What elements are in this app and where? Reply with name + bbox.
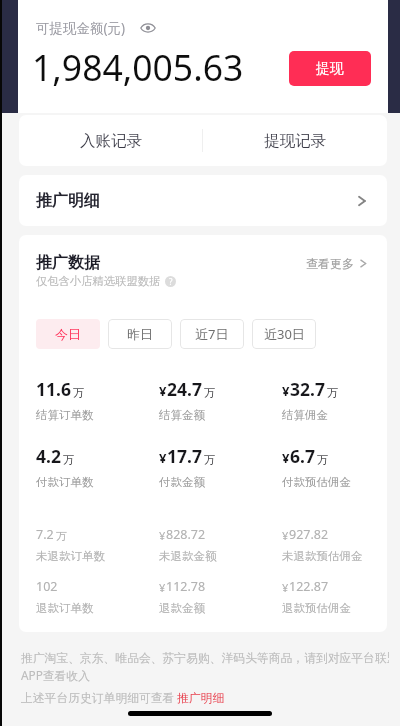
staticText: 退款预估佣金 [282,601,351,615]
staticText: 927.82 [289,526,329,543]
staticText: ¥ [282,580,289,595]
staticText: 6.7 [290,444,315,468]
button[interactable]: 近7日 [180,319,244,349]
staticText: 32.7 [290,377,325,401]
staticText: ¥ [282,449,290,467]
staticText: 万 [327,386,339,400]
staticText: 未退款预估佣金 [282,549,363,563]
button[interactable]: 提现记录 [203,115,387,166]
button[interactable]: 今日 [36,319,100,349]
staticText: 11.6 [36,377,71,401]
staticText: 7.2 [36,526,54,543]
staticText: 结算佣金 [282,408,328,422]
staticText: 102 [36,578,58,595]
staticText: 退款订单数 [36,601,94,615]
staticText: 可提现金额(元) [36,19,126,37]
staticText: ? [169,276,173,287]
staticText: 推广淘宝、京东、唯品会、苏宁易购、洋码头等商品，请到对应平台联盟 APP查看收入 [21,651,389,683]
staticText: 推广明细 [36,191,100,211]
staticText: 1,984,005.63 [32,43,244,91]
button[interactable]: 近30日 [252,319,316,349]
staticText: 未退款订单数 [36,549,105,563]
staticText: 近7日 [195,325,229,343]
staticText: 24.7 [167,377,202,401]
button[interactable]: 昨日 [108,319,172,349]
staticText: 付款金额 [159,475,205,489]
staticText: 退款金额 [159,601,205,615]
button[interactable]: 推广明细 [177,691,225,706]
staticText: ¥ [159,382,167,400]
staticText: 万 [204,386,216,400]
staticText: 入账记录 [80,131,142,151]
staticText: 上述平台历史订单明细可查看 [21,691,175,706]
staticText: ¥ [282,382,290,400]
staticText: 推广数据 [36,253,100,273]
staticText: 17.7 [167,444,202,468]
staticText: ¥ [159,449,167,467]
staticText: 828.72 [166,526,206,543]
staticText: 结算订单数 [36,408,94,422]
staticText: 未退款金额 [159,549,217,563]
staticText: 万 [63,453,75,467]
staticText: 付款预估佣金 [282,475,351,489]
staticText: 推广明细 [177,691,225,706]
staticText: 提现记录 [264,131,326,151]
staticText: 付款订单数 [36,475,94,489]
button[interactable]: 推广明细 [19,175,387,226]
button[interactable]: 查看更多 [306,256,369,271]
button[interactable]: Toggle balance visibility [140,20,156,36]
staticText: 仅包含小店精选联盟数据 [36,274,161,288]
staticText: 万 [317,453,329,467]
staticText: 今日 [55,326,81,342]
staticText: ¥ [282,528,289,543]
staticText: 近30日 [264,325,305,343]
staticText: 万 [73,386,85,400]
button[interactable]: 入账记录 [19,115,202,166]
staticText: 提现 [316,60,344,78]
staticText: 万 [204,453,216,467]
staticText: 查看更多 [306,256,354,271]
staticText: 昨日 [127,326,153,342]
staticText: ¥ [159,528,166,543]
staticText: 结算金额 [159,408,205,422]
staticText: ¥ [159,580,166,595]
staticText: 万 [56,529,67,543]
button[interactable]: 提现 [289,51,371,86]
staticText: 122.87 [289,578,329,595]
staticText: 112.78 [166,578,206,595]
staticText: 4.2 [36,444,61,468]
